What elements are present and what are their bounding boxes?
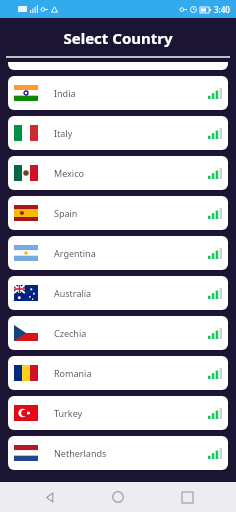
button[interactable]: Australia [8,276,228,310]
button[interactable]: Romania [8,356,228,390]
staticText: India [54,87,76,99]
staticText: Czechia [54,327,87,339]
staticText: Mexico [54,167,84,179]
staticText: Netherlands [54,447,107,459]
button[interactable]: Mexico [8,156,228,190]
button[interactable]: Netherlands [8,436,228,470]
staticText: Spain [54,207,78,219]
button[interactable]: Czechia [8,316,228,350]
button[interactable]: India [8,76,228,110]
staticText: Australia [54,287,92,299]
button[interactable]: Home [98,482,138,512]
staticText: Turkey [54,407,83,419]
staticText: Romania [54,367,92,379]
staticText: Select Country [0,28,236,48]
button[interactable]: Argentina [8,236,228,270]
button[interactable]: Italy [8,116,228,150]
staticText: Argentina [54,247,96,259]
button[interactable]: Back [29,482,69,512]
staticText: 3:40 [214,4,230,15]
button[interactable]: Recent apps [167,482,207,512]
button[interactable]: Spain [8,196,228,230]
button[interactable]: Turkey [8,396,228,430]
staticText: Italy [54,127,73,139]
